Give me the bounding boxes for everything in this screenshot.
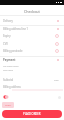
button[interactable]: Billing address [3,84,59,90]
button[interactable]: Payment [3,57,59,63]
button[interactable]: APPLY [2,102,14,108]
button[interactable]: CVV [3,41,59,47]
staticText: Expiry [3,34,11,38]
staticText: PLACE ORDER [23,112,41,116]
staticText: Checkout [24,9,40,14]
staticText: Subtotal [3,78,14,82]
staticText: Billing address line 1 [3,27,29,31]
staticText: Billing address [3,85,21,89]
staticText: Free [54,79,59,82]
staticText: APPLY [5,104,12,107]
staticText: Payment [3,58,16,62]
staticText: Delivery [3,19,13,23]
button[interactable]: Delivery [3,18,59,24]
staticText: We never store your data [3,65,19,71]
button[interactable]: PLACE ORDER [2,110,62,118]
button[interactable]: Expiry [3,33,59,39]
staticText: CVV [3,42,8,46]
button[interactable]: Billing postcode [3,48,59,54]
button[interactable]: Subtotal [3,77,59,83]
button[interactable]: Billing address line 1 [3,26,59,32]
staticText: Billing postcode [3,49,23,53]
